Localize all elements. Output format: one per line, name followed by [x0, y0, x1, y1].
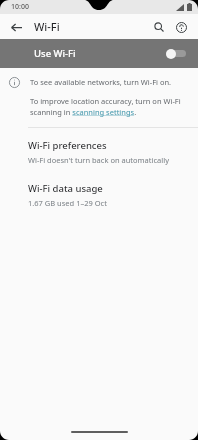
- staticText: Wi-Fi doesn't turn back on automatically: [28, 155, 169, 165]
- button[interactable]: Search: [148, 16, 170, 38]
- button[interactable]: Help: [170, 16, 192, 38]
- staticText: To improve location accuracy, turn on Wi…: [30, 96, 186, 117]
- staticText: Wi-Fi: [34, 19, 60, 34]
- button[interactable]: Wi-Fi preferences: [0, 135, 198, 169]
- staticText: Wi-Fi preferences: [28, 139, 107, 152]
- button[interactable]: Wi-Fi data usage: [0, 178, 198, 212]
- button[interactable]: Back: [6, 17, 26, 37]
- staticText: To see available networks, turn Wi-Fi on…: [30, 77, 172, 87]
- staticText: Use Wi-Fi: [34, 47, 76, 60]
- staticText: 10:00: [11, 2, 29, 12]
- staticText: Wi-Fi data usage: [28, 182, 103, 195]
- button[interactable]: Use Wi-Fi: [0, 39, 198, 68]
- staticText: 1.67 GB used 1–29 Oct: [28, 198, 107, 208]
